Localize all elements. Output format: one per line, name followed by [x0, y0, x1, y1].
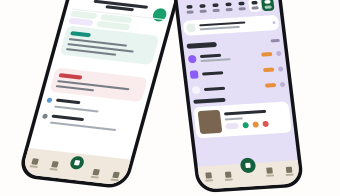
button[interactable]	[175, 108, 270, 139]
button[interactable]: Day	[191, 4, 203, 17]
button[interactable]	[90, 112, 182, 121]
button[interactable]	[176, 56, 269, 64]
button[interactable]: Scan	[234, 168, 253, 181]
button[interactable]: Profile	[253, 168, 273, 182]
button[interactable]: Log	[215, 161, 230, 176]
button[interactable]	[176, 71, 269, 79]
button[interactable]: Day	[230, 4, 242, 17]
button[interactable]: Home	[85, 151, 105, 166]
button[interactable]	[176, 87, 269, 95]
button[interactable]: Day	[217, 4, 229, 17]
button[interactable]: Log	[129, 150, 142, 163]
button[interactable]: Day	[178, 4, 190, 17]
button[interactable]: Add	[170, 0, 183, 10]
button[interactable]: Day	[256, 4, 268, 17]
button[interactable]: Library	[105, 151, 125, 166]
button[interactable]: Day	[204, 4, 216, 17]
button[interactable]: Day	[243, 4, 255, 17]
button[interactable]	[175, 21, 270, 36]
button[interactable]: Library	[192, 167, 212, 183]
button[interactable]	[90, 96, 182, 105]
